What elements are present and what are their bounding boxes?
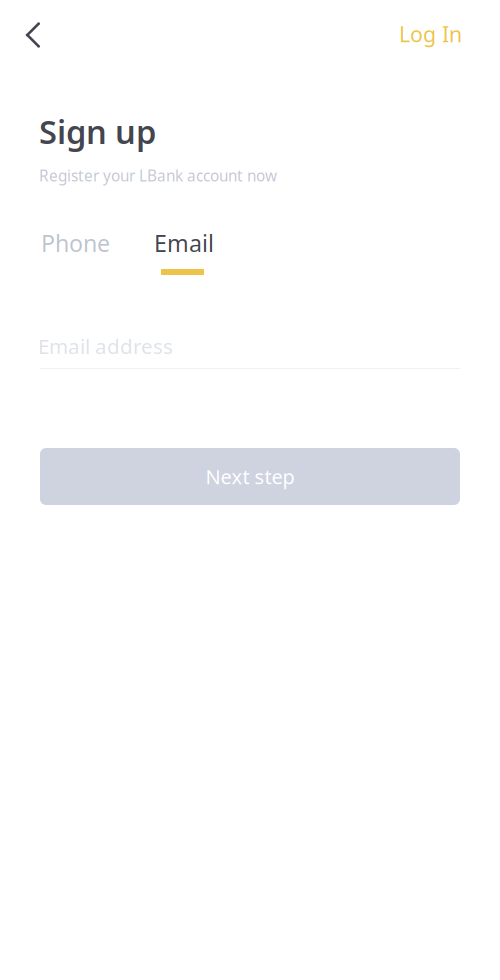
staticText: Email [154,227,214,259]
button[interactable]: Log In [366,8,462,60]
button[interactable]: Email address [38,327,460,371]
button[interactable]: Next step [40,448,460,505]
staticText: Email address [38,332,173,360]
staticText: Next step [205,463,294,490]
button[interactable]: Back [5,9,61,61]
staticText: Phone [41,227,110,259]
button[interactable]: Email [154,223,214,275]
button[interactable]: Phone [41,223,121,263]
staticText: Register your LBank account now [39,165,277,186]
staticText: Log In [399,19,462,49]
staticText: Sign up [39,109,156,153]
